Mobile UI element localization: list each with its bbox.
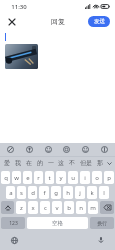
button[interactable]: Keyboard tool 1 (5, 144, 16, 155)
button[interactable]: Close (5, 15, 18, 28)
staticText: s (20, 189, 23, 197)
button[interactable]: Attached photo (5, 44, 38, 69)
staticText: t (48, 174, 51, 182)
staticText: 这 (58, 159, 64, 167)
button[interactable]: 换行 (90, 217, 114, 229)
staticText: 我 (15, 159, 21, 167)
staticText: l (103, 189, 105, 197)
button[interactable]: i (80, 171, 90, 184)
staticText: 爱 (4, 159, 10, 167)
staticText: 但是 (80, 159, 92, 167)
button[interactable]: v (52, 201, 62, 214)
button[interactable]: e (23, 171, 32, 184)
button[interactable]: 不 (69, 159, 75, 167)
button[interactable]: l (99, 186, 109, 199)
button[interactable]: o (92, 171, 102, 184)
staticText: 回复 (51, 17, 65, 26)
staticText: i (84, 174, 86, 182)
staticText: b (67, 204, 71, 212)
staticText: c (44, 204, 47, 212)
button[interactable]: 发送 (88, 16, 110, 27)
button[interactable]: a (6, 186, 15, 199)
staticText: 一 (48, 159, 54, 167)
staticText: 空格 (52, 220, 63, 227)
button[interactable]: Keyboard tool 2 (24, 144, 35, 155)
staticText: u (71, 174, 75, 182)
button[interactable]: Keyboard tool 5 (80, 144, 91, 155)
button[interactable]: u (68, 171, 78, 184)
button[interactable]: f (39, 186, 49, 199)
staticText: e (26, 174, 30, 182)
staticText: 123 (9, 220, 18, 227)
button[interactable]: z (16, 201, 26, 214)
staticText: 换行 (97, 220, 107, 226)
button[interactable]: Switch language (8, 234, 20, 246)
button[interactable]: 我 (15, 159, 21, 167)
staticText: m (90, 204, 96, 212)
staticText: a (9, 189, 13, 197)
staticText: 那 (97, 159, 103, 167)
staticText: d (31, 189, 35, 197)
button[interactable]: Backspace (100, 201, 114, 214)
staticText: k (90, 189, 94, 197)
button[interactable]: c (40, 201, 50, 214)
button[interactable]: h (63, 186, 73, 199)
button[interactable]: s (17, 186, 26, 199)
staticText: p (107, 174, 111, 182)
button[interactable]: t (45, 171, 54, 184)
staticText: 11:30 (11, 3, 27, 11)
button[interactable]: 123 (1, 217, 25, 229)
button[interactable]: Voice input (95, 234, 107, 246)
button[interactable]: 空格 (27, 217, 88, 229)
button[interactable]: r (34, 171, 43, 184)
button[interactable]: y (56, 171, 66, 184)
staticText: o (95, 174, 99, 182)
staticText: w (14, 174, 19, 182)
button[interactable]: 这 (58, 159, 64, 167)
button[interactable]: 那 (97, 159, 103, 167)
button[interactable]: More candidates (104, 157, 115, 169)
button[interactable]: d (28, 186, 37, 199)
staticText: h (66, 189, 70, 197)
staticText: r (37, 174, 40, 182)
button[interactable]: 在 (26, 159, 32, 167)
staticText: 的 (37, 159, 43, 167)
button[interactable]: Keyboard tool 6 (99, 144, 110, 155)
button[interactable]: 的 (37, 159, 43, 167)
staticText: 不 (69, 159, 75, 167)
staticText: x (31, 204, 35, 212)
staticText: z (20, 204, 23, 212)
staticText: y (59, 174, 63, 182)
staticText: n (79, 204, 83, 212)
button[interactable]: k (87, 186, 97, 199)
button[interactable]: 一 (48, 159, 54, 167)
button[interactable]: Shift (1, 201, 14, 214)
staticText: 发送 (94, 18, 105, 25)
staticText: v (55, 204, 59, 212)
button[interactable]: Keyboard tool 3 (43, 144, 54, 155)
button[interactable]: 但是 (80, 159, 92, 167)
button[interactable]: q (1, 171, 10, 184)
staticText: g (54, 189, 58, 197)
button[interactable]: m (88, 201, 98, 214)
button[interactable]: 爱 (4, 159, 10, 167)
staticText: f (43, 189, 46, 197)
button[interactable]: b (64, 201, 74, 214)
button[interactable]: j (75, 186, 85, 199)
staticText: 在 (26, 159, 32, 167)
button[interactable]: p (104, 171, 114, 184)
button[interactable]: x (28, 201, 38, 214)
staticText: j (79, 189, 81, 197)
button[interactable]: Keyboard tool 4 (61, 144, 72, 155)
staticText: q (4, 174, 8, 182)
button[interactable]: n (76, 201, 86, 214)
button[interactable]: g (51, 186, 61, 199)
button[interactable]: w (12, 171, 21, 184)
